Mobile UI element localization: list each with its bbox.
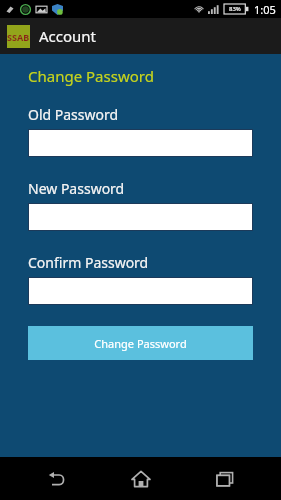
staticText: Confirm Password	[28, 253, 149, 272]
staticText: 1:05	[254, 2, 276, 17]
staticText: Change Password	[94, 336, 187, 351]
staticText: Old Password	[28, 105, 119, 124]
button[interactable]: Recent apps	[197, 457, 253, 500]
staticText: Change Password	[28, 66, 154, 86]
button[interactable]: Change Password	[28, 326, 253, 360]
staticText: Account	[39, 26, 97, 46]
staticText: SSAB	[7, 31, 30, 43]
button[interactable]: Home	[113, 457, 169, 500]
button[interactable]	[28, 277, 253, 305]
button[interactable]: Back	[28, 457, 84, 500]
button[interactable]	[28, 203, 253, 231]
button[interactable]	[28, 129, 253, 157]
staticText: 83%	[229, 5, 241, 13]
staticText: New Password	[28, 179, 125, 198]
